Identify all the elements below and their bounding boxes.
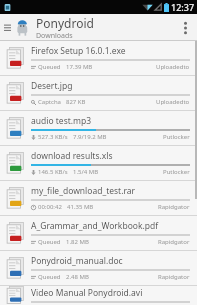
staticText: Putlocker [163,133,190,141]
button[interactable]: download results.xls [0,146,197,181]
staticText: download results.xls [31,150,113,162]
staticText: Uploadedto [156,63,190,71]
staticText: 12:37 [171,1,195,13]
staticText: 827 KB [66,98,86,106]
staticText: 7.9/19.2 MB [73,133,107,141]
staticText: Queued [38,238,61,246]
staticText: 2.48 MB [66,273,89,281]
button[interactable]: Open navigation drawer [2,15,13,40]
button[interactable]: Video Manual Ponydroid.avi [0,286,197,305]
staticText: 00:00:42 [38,203,62,211]
staticText: 17.39 MB [66,63,93,71]
staticText: my_file_download_test.rar [31,185,136,197]
staticText: Rapidgator [158,203,190,211]
staticText: Queued [38,63,61,71]
button[interactable]: my_file_download_test.rar [0,181,197,216]
staticText: 146.5 KB/s [38,168,68,176]
staticText: audio test.mp3 [31,115,92,127]
staticText: Firefox Setup 16.0.1.exe [31,45,126,57]
staticText: Uploadedto [156,98,190,106]
button[interactable]: Ponydroid_manual.doc [0,251,197,286]
button[interactable]: More options [177,15,193,40]
staticText: Desert.jpg [31,80,73,92]
staticText: Video Manual Ponydroid.avi [31,287,143,299]
staticText: Ponydroid [36,15,94,31]
other: Ponydroid logo [13,18,32,37]
staticText: 527.3 KB/s [38,133,68,141]
staticText: Putlocker [163,168,190,176]
button[interactable]: Firefox Setup 16.0.1.exe [0,41,197,76]
staticText: Queued [38,273,61,281]
staticText: Downloads [36,31,73,41]
button[interactable]: A_Grammar_and_Workbook.pdf [0,216,197,251]
staticText: 41.35 MB [67,203,94,211]
staticText: Rapidgator [158,273,190,281]
staticText: 1.5/4 MB [73,168,99,176]
staticText: A_Grammar_and_Workbook.pdf [31,220,159,232]
button[interactable]: audio test.mp3 [0,111,197,146]
staticText: Ponydroid_manual.doc [31,255,123,267]
staticText: Rapidgator [158,238,190,246]
button[interactable]: Desert.jpg [0,76,197,111]
staticText: Captcha [38,98,61,106]
staticText: 1.82 MB [66,238,89,246]
